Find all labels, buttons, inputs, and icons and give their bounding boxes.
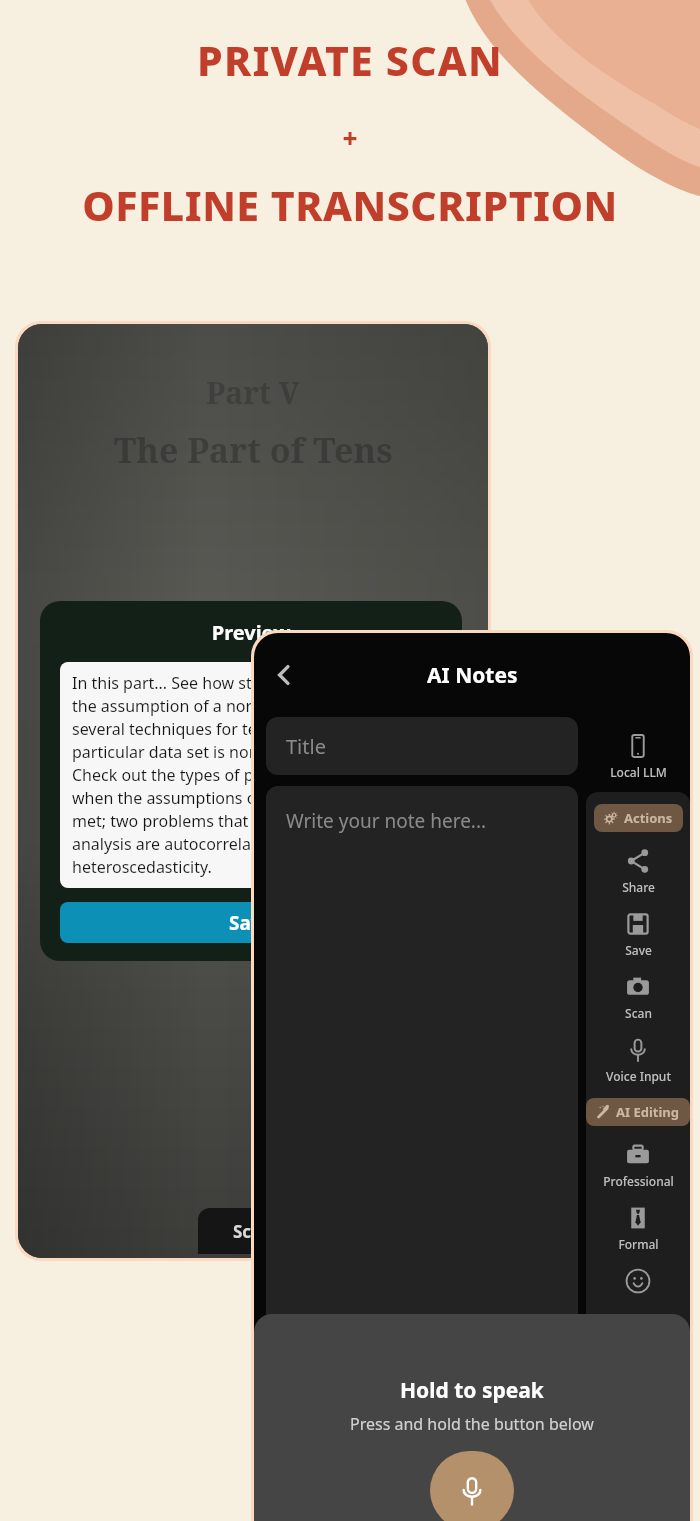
button[interactable]: AI Editing <box>586 1098 690 1126</box>
staticText: Preview <box>60 619 442 646</box>
staticText: Press and hold the button below <box>350 1413 594 1435</box>
button[interactable]: Save <box>588 909 688 960</box>
staticText: OFFLINE TRANSCRIPTION <box>82 177 618 233</box>
staticText: Hold to speak <box>400 1376 544 1405</box>
staticText: Local LLM <box>610 764 667 780</box>
staticText: AI Editing <box>616 1103 680 1121</box>
staticText: Write your note here... <box>286 808 487 834</box>
staticText: Share <box>622 879 655 895</box>
staticText: Scan <box>233 1220 273 1243</box>
button[interactable]: Professional <box>588 1140 688 1191</box>
staticText: Scan <box>625 1005 652 1021</box>
button[interactable]: Voice Input <box>588 1035 688 1086</box>
staticText: PRIVATE SCAN <box>197 32 503 88</box>
button[interactable]: Back <box>262 653 306 697</box>
staticText: Actions <box>624 809 673 827</box>
button[interactable]: Local LLM <box>588 731 688 782</box>
button[interactable]: Title <box>266 717 578 775</box>
staticText: Formal <box>618 1236 659 1252</box>
button[interactable]: Formal <box>588 1203 688 1254</box>
button[interactable]: Share <box>588 846 688 897</box>
button[interactable]: Hold to speak <box>430 1451 514 1521</box>
staticText: The Part of Tens <box>114 427 393 473</box>
staticText: Title <box>286 733 326 760</box>
staticText: Part V <box>206 372 300 413</box>
staticText: In this part... See how statistics works… <box>72 672 430 878</box>
button[interactable]: Save <box>60 902 442 943</box>
staticText: Save <box>229 910 274 936</box>
staticText: AI Notes <box>427 661 518 690</box>
button[interactable]: Scan <box>588 972 688 1023</box>
staticText: Voice Input <box>606 1068 671 1084</box>
button[interactable]: Actions <box>594 804 683 832</box>
staticText: + <box>342 120 358 155</box>
staticText: Professional <box>603 1173 674 1189</box>
button[interactable]: Scan <box>198 1208 308 1254</box>
staticText: Save <box>625 942 652 958</box>
button[interactable]: Write your note here... <box>266 786 578 1521</box>
